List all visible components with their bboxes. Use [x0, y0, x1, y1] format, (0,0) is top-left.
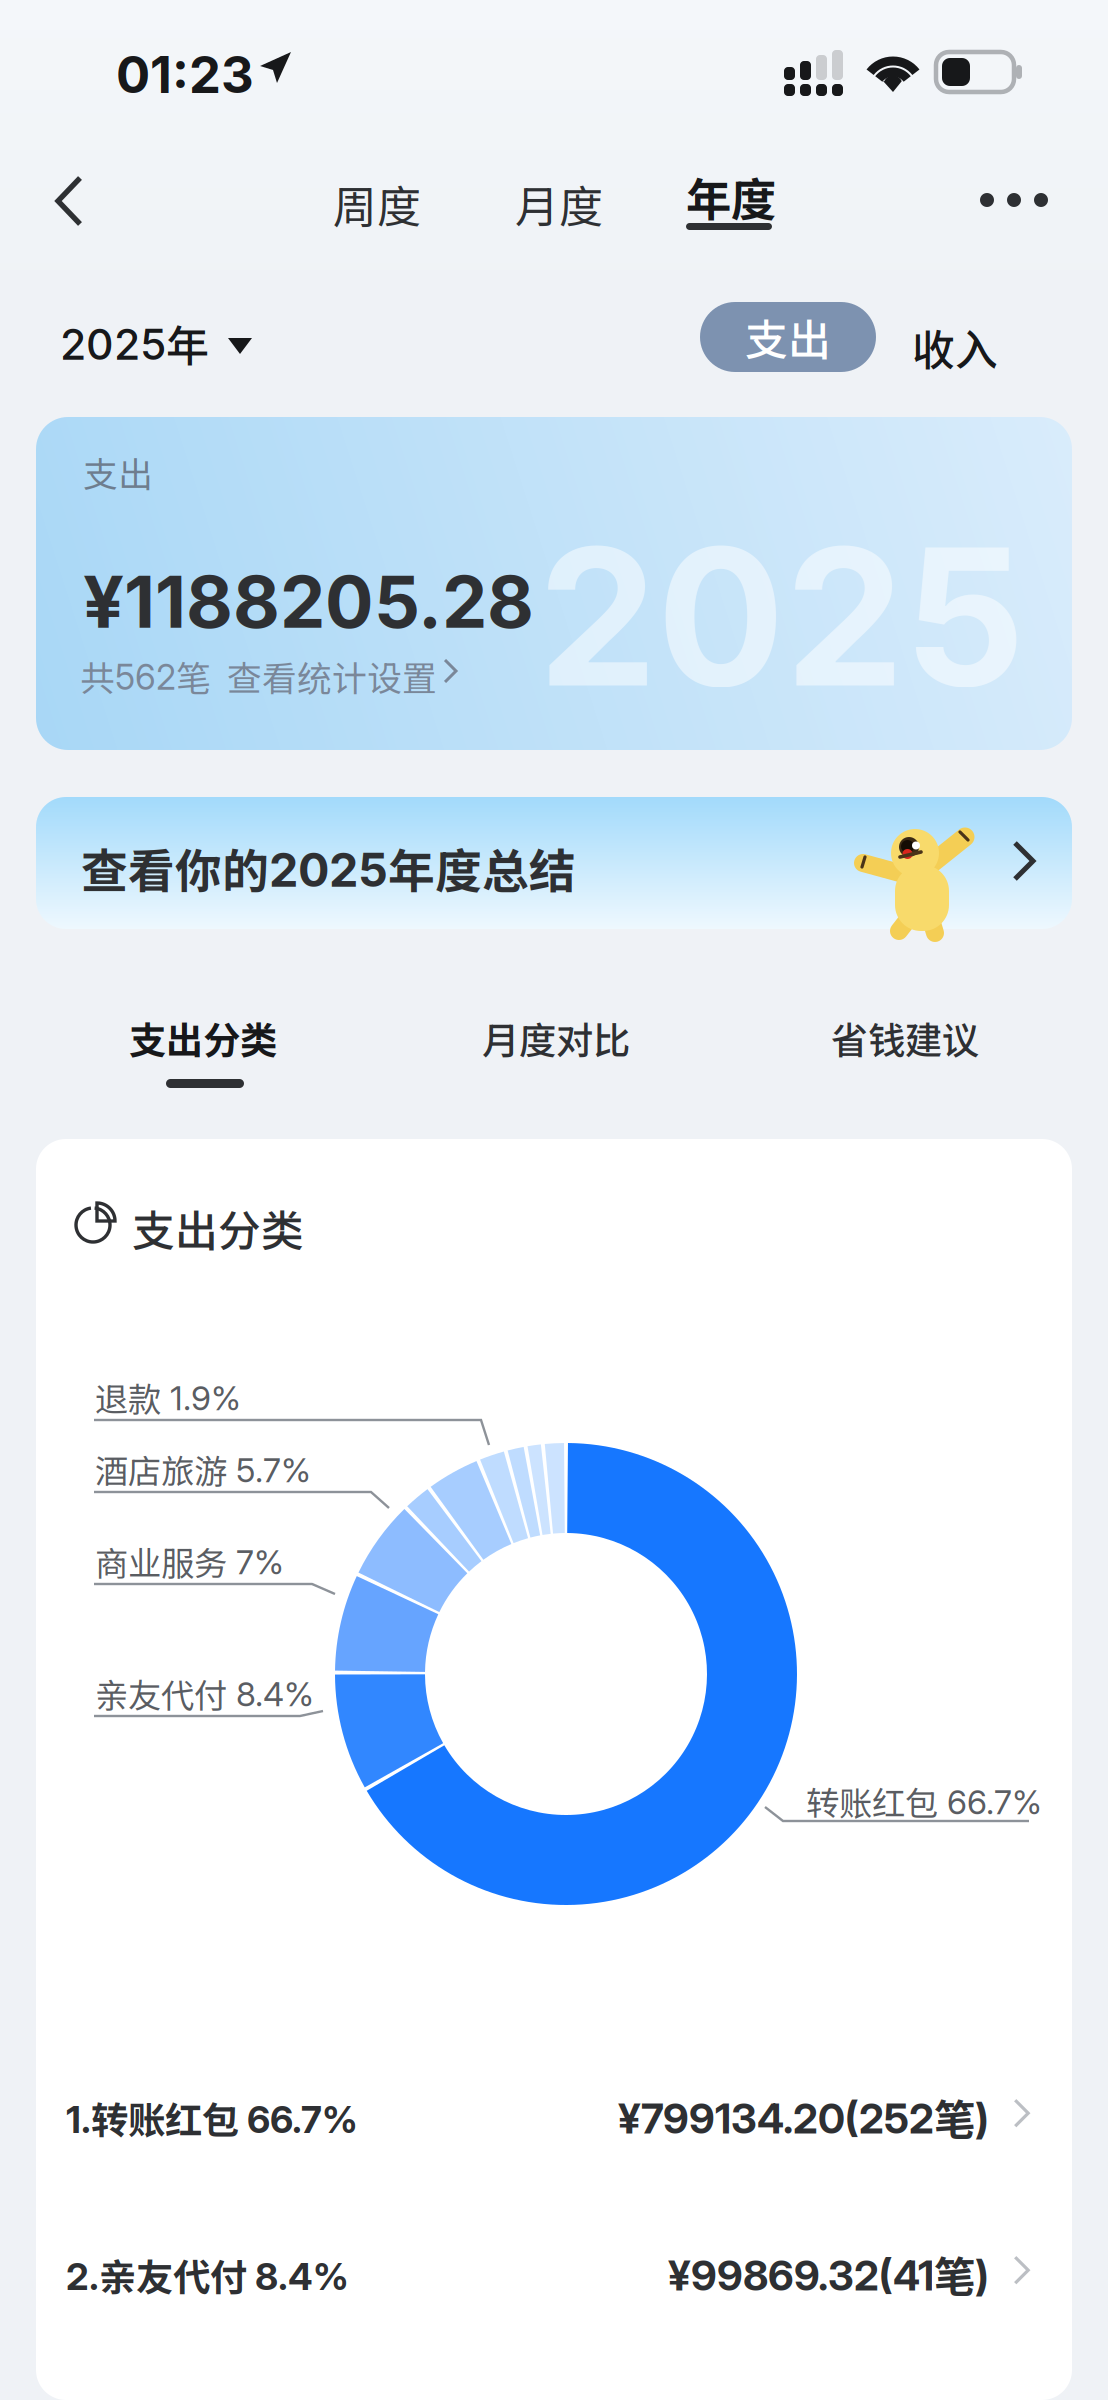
button[interactable]: 年度	[660, 154, 810, 264]
staticText: 支出	[745, 306, 831, 368]
staticText: 年度	[686, 164, 776, 230]
button[interactable]: 省钱建议	[831, 1001, 1071, 1091]
staticText: 01:23	[116, 44, 254, 105]
button[interactable]: 支出分类	[129, 1001, 389, 1121]
staticText: 查看你的2025年度总结	[81, 834, 576, 902]
staticText: 收入	[912, 316, 998, 378]
staticText: 支出分类	[132, 1197, 304, 1259]
button[interactable]: 共562笔 查看统计设置	[80, 645, 510, 701]
staticText: 月度对比	[482, 1011, 630, 1065]
button[interactable]: 查看你的2025年度总结	[36, 797, 1072, 929]
staticText: 2.亲友代付 8.4%	[66, 2248, 349, 2302]
button[interactable]: 月度	[490, 158, 640, 244]
button[interactable]: More	[960, 155, 1080, 245]
staticText: 酒店旅游 5.7%	[95, 1445, 311, 1493]
button[interactable]: 2025年	[60, 300, 320, 390]
staticText: 月度	[515, 172, 603, 236]
staticText: 支出分类	[129, 1011, 277, 1065]
staticText: 省钱建议	[831, 1011, 979, 1065]
button[interactable]: 支出	[700, 302, 876, 372]
staticText: 转账红包 66.7%	[806, 1777, 1042, 1825]
button[interactable]: 周度	[308, 158, 458, 244]
button[interactable]: 2.亲友代付 8.4%	[36, 2204, 1072, 2344]
staticText: 2025年	[60, 312, 209, 374]
button[interactable]: 1.转账红包 66.7%	[36, 2047, 1072, 2187]
staticText: 1.转账红包 66.7%	[66, 2091, 358, 2145]
staticText: ¥99869.32(41笔)	[668, 2244, 989, 2304]
staticText: ¥799134.20(252笔)	[618, 2087, 989, 2147]
staticText: 支出	[83, 447, 153, 497]
staticText: 亲友代付 8.4%	[95, 1669, 314, 1717]
staticText: 商业服务 7%	[95, 1537, 284, 1585]
staticText: 周度	[333, 172, 421, 236]
button[interactable]: 月度对比	[482, 1001, 722, 1091]
button[interactable]: Back	[16, 152, 116, 252]
staticText: 共562笔 查看统计设置	[80, 651, 437, 701]
button[interactable]: 收入	[898, 302, 1048, 372]
staticText: ¥1188205.28	[83, 558, 534, 645]
staticText: 退款 1.9%	[95, 1373, 241, 1421]
staticText: 2025	[538, 502, 1025, 731]
